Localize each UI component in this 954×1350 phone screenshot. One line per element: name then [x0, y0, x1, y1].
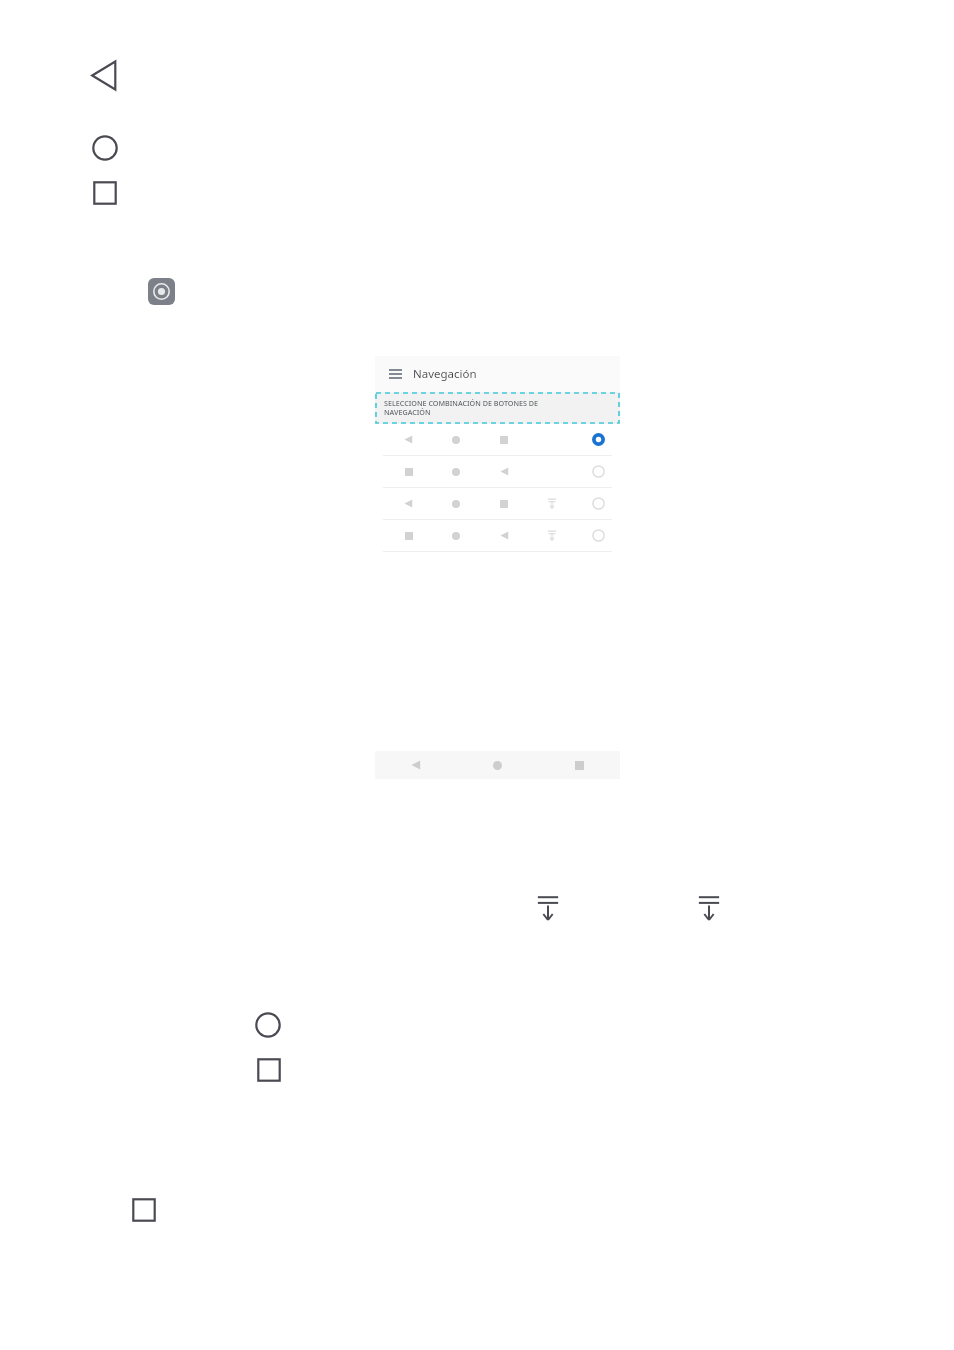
button[interactable] — [375, 456, 620, 487]
button[interactable] — [375, 520, 620, 551]
button[interactable]: Recents — [257, 1058, 281, 1082]
button[interactable]: Home — [92, 135, 118, 161]
staticText: SELECCIONE COMBINACIÓN DE BOTONES DE NAV… — [384, 398, 539, 418]
button[interactable]: Menu — [385, 364, 405, 384]
staticText: Navegación — [413, 366, 477, 382]
button[interactable]: Pull down notification panel — [696, 893, 722, 923]
button[interactable]: Pull down notification panel — [535, 893, 561, 923]
button[interactable] — [375, 424, 620, 455]
button[interactable]: Recents — [132, 1198, 156, 1222]
button[interactable] — [375, 488, 620, 519]
button[interactable]: Accessibility shortcut — [148, 278, 175, 305]
button[interactable]: Recents — [93, 181, 117, 205]
button[interactable]: Home — [255, 1012, 281, 1038]
button[interactable]: Back — [88, 58, 123, 93]
